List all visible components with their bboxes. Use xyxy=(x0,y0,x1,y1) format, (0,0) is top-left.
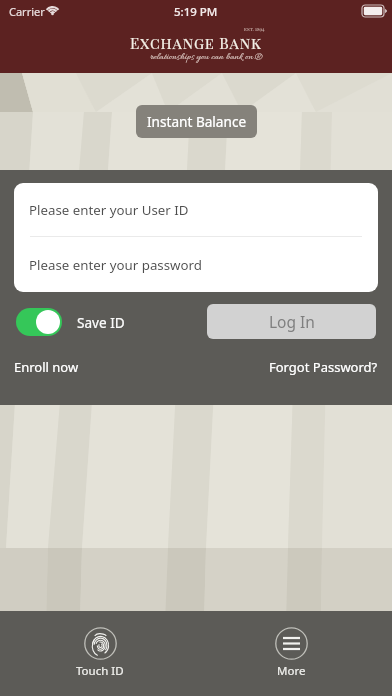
other: More xyxy=(275,627,308,660)
button[interactable]: Touch ID xyxy=(50,627,150,679)
staticText: Save ID xyxy=(77,313,125,332)
staticText: More xyxy=(277,663,306,679)
staticText: Instant Balance xyxy=(147,112,247,131)
button[interactable]: Save ID xyxy=(16,308,125,336)
staticText: Touch ID xyxy=(76,663,124,679)
staticText: Please enter your password xyxy=(29,256,202,274)
staticText: Log In xyxy=(269,311,315,332)
button[interactable]: Please enter your password xyxy=(14,237,378,292)
staticText: Carrier xyxy=(9,4,45,19)
staticText: Forgot Password? xyxy=(269,358,378,376)
button[interactable]: Instant Balance xyxy=(136,105,257,138)
button[interactable]: Enroll now xyxy=(14,358,79,376)
button[interactable]: More xyxy=(241,627,341,679)
staticText: 5:19 PM xyxy=(174,4,218,20)
button[interactable]: Forgot Password? xyxy=(269,358,378,376)
staticText: Enroll now xyxy=(14,358,79,376)
staticText: Please enter your User ID xyxy=(29,201,189,219)
other: Touch ID xyxy=(84,627,117,660)
button[interactable]: Please enter your User ID xyxy=(14,183,378,236)
staticText: est. 1894 xyxy=(244,26,265,33)
staticText: Exchange Bank xyxy=(130,33,262,53)
staticText: relationships you can bank on.® xyxy=(150,51,263,64)
button[interactable]: Log In xyxy=(207,304,376,339)
